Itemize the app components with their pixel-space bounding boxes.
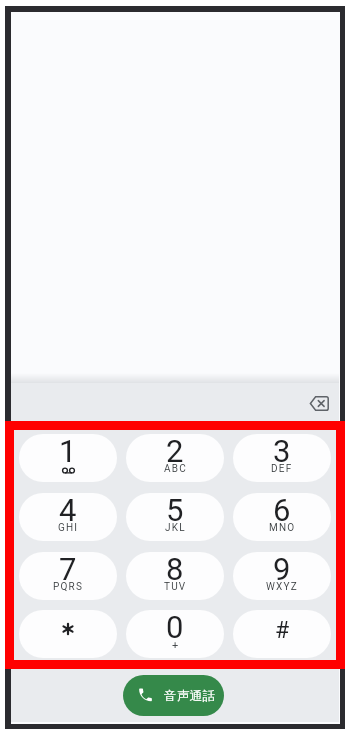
button[interactable]: 7 [19, 552, 117, 600]
staticText: MNO [269, 522, 296, 534]
staticText: ABC [164, 463, 187, 475]
staticText: 3 [273, 434, 291, 469]
staticText: + [172, 639, 179, 652]
button[interactable]: 4 [19, 493, 117, 541]
staticText: TUV [164, 581, 187, 593]
button[interactable]: 9 [233, 552, 331, 600]
staticText: PQRS [53, 581, 84, 593]
button[interactable]: 5 [126, 493, 224, 541]
button[interactable]: # [233, 610, 331, 658]
button[interactable]: 8 [126, 552, 224, 600]
staticText: 5 [166, 493, 184, 528]
staticText: 7 [59, 552, 77, 587]
staticText: 1 [59, 434, 77, 469]
button[interactable]: 1 [19, 434, 117, 482]
button[interactable]: 3 [233, 434, 331, 482]
staticText: # [275, 617, 290, 644]
staticText: 音声通話 [164, 688, 216, 704]
button[interactable] [19, 610, 117, 658]
staticText: DEF [271, 463, 293, 475]
staticText: WXYZ [266, 581, 298, 593]
staticText: 6 [273, 493, 291, 528]
staticText: 0 [166, 610, 184, 645]
button[interactable]: 2 [126, 434, 224, 482]
staticText: GHI [58, 522, 79, 534]
button[interactable]: 6 [233, 493, 331, 541]
staticText: 2 [166, 434, 184, 469]
staticText: 8 [166, 552, 184, 587]
button[interactable]: 0 [126, 610, 224, 658]
button[interactable]: 音声通話 [123, 675, 224, 716]
staticText: 9 [273, 552, 291, 587]
button[interactable] [306, 390, 333, 417]
staticText: 4 [59, 493, 77, 528]
staticText: JKL [165, 522, 186, 534]
